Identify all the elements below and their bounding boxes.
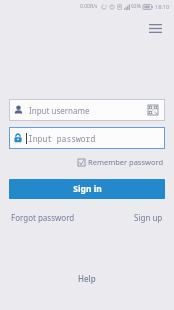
staticText: Remember password xyxy=(88,157,164,167)
button[interactable]: Menu xyxy=(143,17,167,39)
button[interactable]: Scan QR code xyxy=(146,103,160,117)
button[interactable]: Input username xyxy=(9,99,165,121)
button[interactable]: Input password xyxy=(9,127,165,149)
staticText: Input password xyxy=(28,133,96,144)
staticText: Input username xyxy=(29,105,146,116)
staticText: Help xyxy=(78,273,96,284)
button[interactable]: Help xyxy=(70,271,104,286)
staticText: Forgot password xyxy=(11,212,75,223)
button[interactable]: Sign in xyxy=(9,179,165,199)
staticText: 18:10 xyxy=(155,3,170,10)
staticText: Sign in xyxy=(73,183,102,195)
button[interactable]: Sign up xyxy=(132,210,165,225)
staticText: 0.00B/s xyxy=(80,3,98,10)
staticText: Sign up xyxy=(134,212,163,223)
staticText: 62% xyxy=(131,3,141,10)
button[interactable]: Remember password xyxy=(77,156,165,168)
button[interactable]: Forgot password xyxy=(9,210,77,225)
